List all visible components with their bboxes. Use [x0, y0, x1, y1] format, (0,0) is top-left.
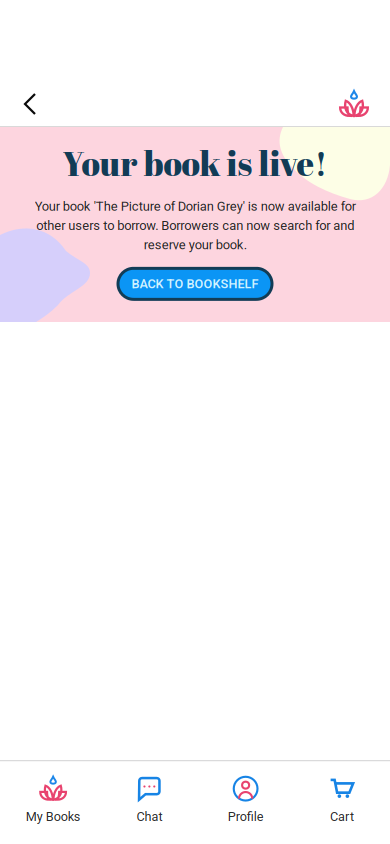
- button[interactable]: Cart: [294, 761, 390, 844]
- staticText: My Books: [26, 809, 81, 824]
- button[interactable]: Profile: [197, 761, 294, 844]
- button[interactable]: My Books: [5, 761, 101, 844]
- staticText: Chat: [136, 809, 162, 824]
- staticText: Your book 'The Picture of Dorian Grey' i…: [34, 199, 355, 252]
- staticText: BACK TO BOOKSHELF: [131, 276, 258, 291]
- button[interactable]: BACK TO BOOKSHELF: [118, 268, 272, 299]
- staticText: Your book is live!: [62, 140, 327, 186]
- button[interactable]: Home: [330, 82, 378, 126]
- button[interactable]: Chat: [101, 761, 197, 844]
- staticText: Cart: [330, 809, 354, 824]
- staticText: Profile: [228, 809, 264, 824]
- button[interactable]: Back: [12, 82, 48, 126]
